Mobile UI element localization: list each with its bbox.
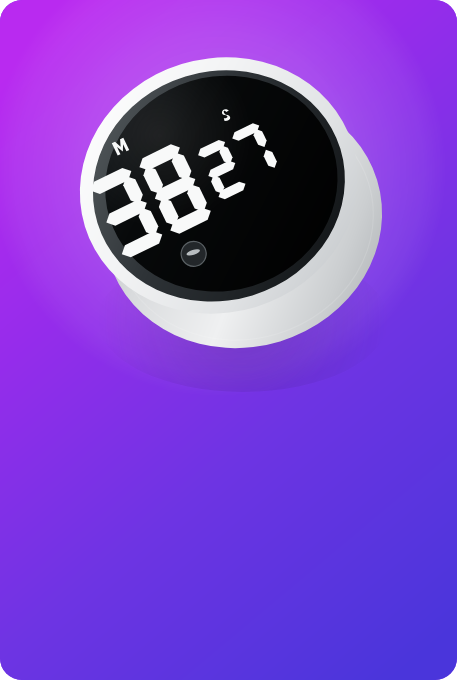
button[interactable]: Rotary kitchen timer showing 38 minutes … [0, 0, 457, 680]
